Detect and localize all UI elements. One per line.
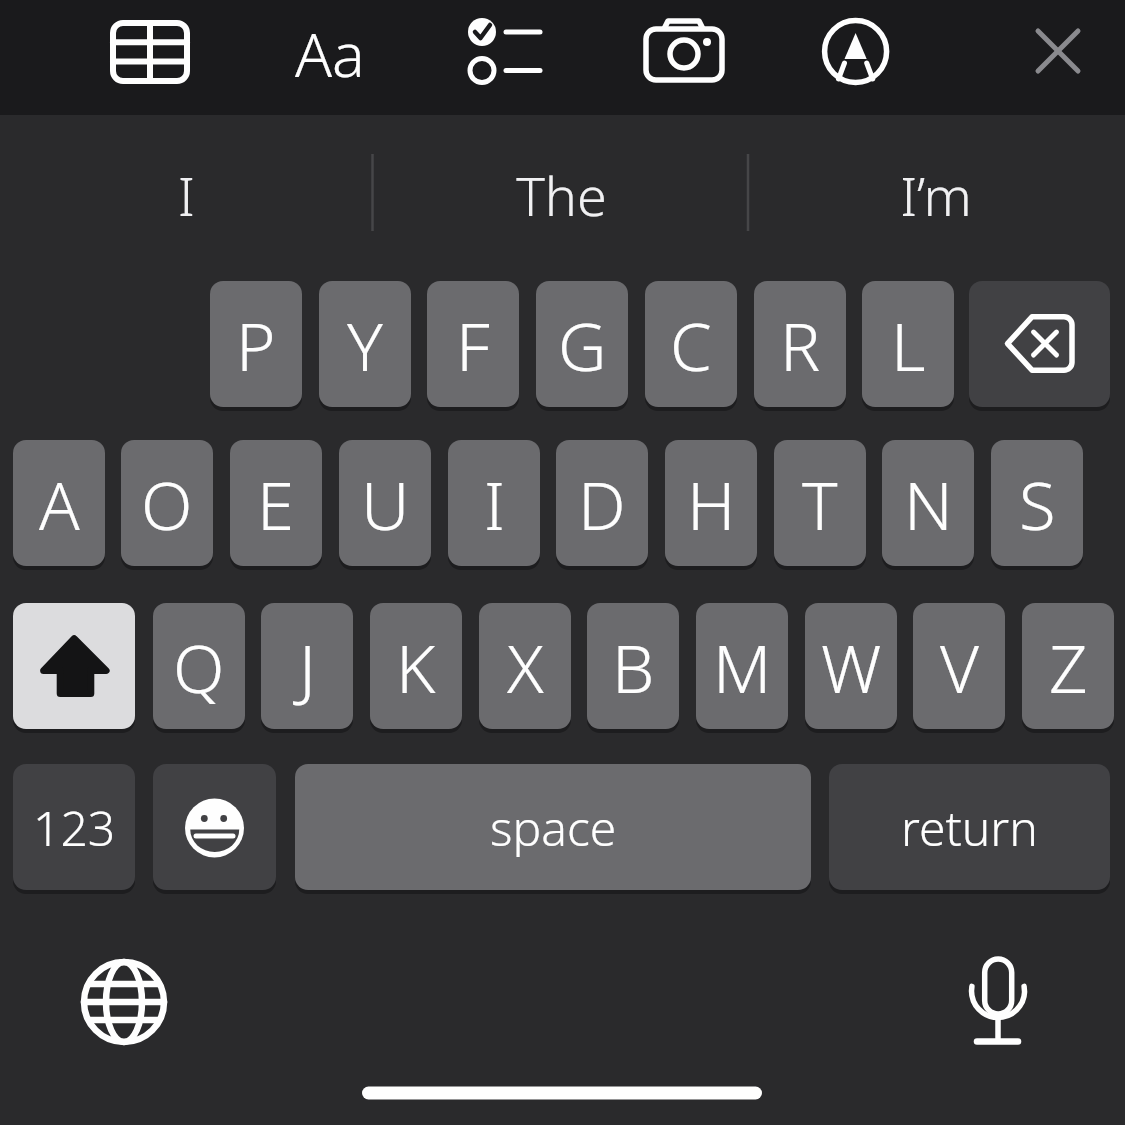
staticText: I xyxy=(484,458,505,549)
staticText: V xyxy=(940,621,979,712)
button[interactable] xyxy=(948,952,1048,1052)
staticText: J xyxy=(299,621,316,712)
button[interactable] xyxy=(13,603,135,729)
button[interactable]: V xyxy=(913,603,1005,729)
staticText: O xyxy=(141,458,193,549)
button[interactable]: T xyxy=(774,440,866,566)
button[interactable]: O xyxy=(121,440,213,566)
staticText: H xyxy=(687,458,736,549)
button[interactable]: U xyxy=(339,440,431,566)
staticText: L xyxy=(891,299,926,390)
staticText: U xyxy=(361,458,410,549)
staticText: T xyxy=(802,458,838,549)
button[interactable]: return xyxy=(829,764,1110,890)
staticText: Q xyxy=(173,621,225,712)
staticText: Z xyxy=(1049,621,1088,712)
button[interactable] xyxy=(1010,5,1110,105)
staticText: X xyxy=(507,621,544,712)
button[interactable]: D xyxy=(556,440,648,566)
button[interactable]: H xyxy=(665,440,757,566)
staticText: F xyxy=(456,299,490,390)
staticText: N xyxy=(904,458,953,549)
button[interactable]: I xyxy=(448,440,540,566)
staticText: Y xyxy=(347,299,383,390)
button[interactable]: Q xyxy=(153,603,245,729)
button[interactable]: R xyxy=(754,281,846,407)
staticText: G xyxy=(558,299,607,390)
button[interactable]: Aa xyxy=(270,0,390,107)
button[interactable]: I’m xyxy=(750,145,1122,245)
button[interactable]: G xyxy=(536,281,628,407)
button[interactable]: B xyxy=(587,603,679,729)
button[interactable]: W xyxy=(805,603,897,729)
button[interactable]: S xyxy=(991,440,1083,566)
button[interactable] xyxy=(800,5,910,105)
button[interactable]: F xyxy=(427,281,519,407)
button[interactable] xyxy=(153,764,276,890)
button[interactable]: I xyxy=(0,145,372,245)
button[interactable]: Y xyxy=(319,281,411,407)
button[interactable]: J xyxy=(261,603,353,729)
staticText: W xyxy=(821,621,882,712)
staticText: M xyxy=(713,621,772,712)
staticText: The xyxy=(516,158,607,232)
staticText: R xyxy=(780,299,821,390)
button[interactable]: P xyxy=(210,281,302,407)
button[interactable] xyxy=(630,5,740,105)
staticText: P xyxy=(236,299,276,390)
button[interactable]: K xyxy=(370,603,462,729)
staticText: 123 xyxy=(33,795,116,860)
button[interactable]: L xyxy=(862,281,954,407)
staticText: B xyxy=(612,621,655,712)
staticText: A xyxy=(39,458,80,549)
staticText: S xyxy=(1019,458,1056,549)
button[interactable]: 123 xyxy=(13,764,135,890)
staticText: return xyxy=(901,795,1038,860)
staticText: space xyxy=(490,795,617,860)
button[interactable] xyxy=(450,5,560,105)
button[interactable]: M xyxy=(696,603,788,729)
button[interactable] xyxy=(74,952,174,1052)
button[interactable]: space xyxy=(295,764,811,890)
button[interactable]: A xyxy=(13,440,105,566)
button[interactable]: X xyxy=(479,603,571,729)
staticText: E xyxy=(257,458,295,549)
staticText: Aa xyxy=(295,12,365,95)
button[interactable] xyxy=(100,5,200,105)
button[interactable]: Z xyxy=(1022,603,1114,729)
staticText: I xyxy=(178,158,195,232)
button[interactable]: C xyxy=(645,281,737,407)
staticText: D xyxy=(578,458,626,549)
button[interactable]: N xyxy=(882,440,974,566)
button[interactable] xyxy=(969,281,1110,407)
button[interactable]: The xyxy=(375,145,747,245)
staticText: C xyxy=(670,299,712,390)
staticText: K xyxy=(396,621,436,712)
staticText: I’m xyxy=(900,158,972,232)
button[interactable]: E xyxy=(230,440,322,566)
